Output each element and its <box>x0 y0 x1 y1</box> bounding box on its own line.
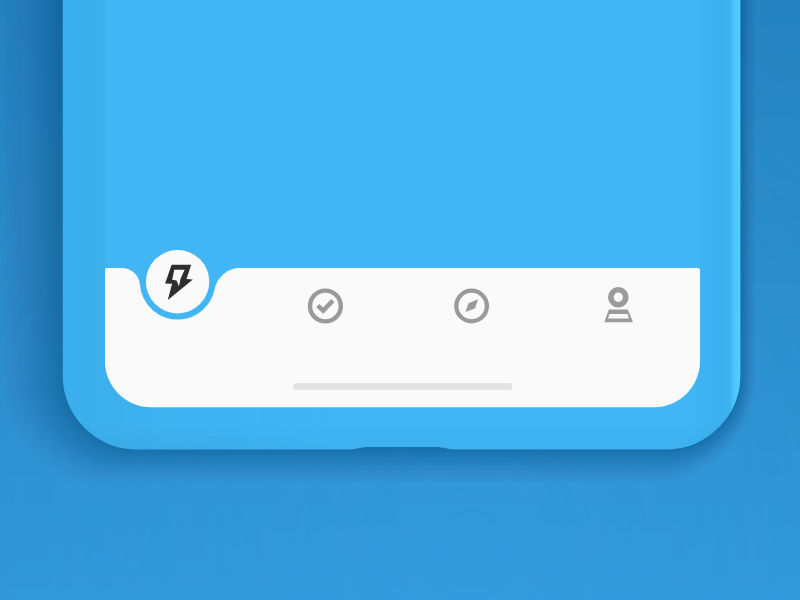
button[interactable]: Profile <box>579 270 653 342</box>
button[interactable]: Quick action <box>146 251 208 313</box>
button[interactable]: Tasks <box>290 270 364 342</box>
button[interactable]: Explore <box>435 270 509 342</box>
